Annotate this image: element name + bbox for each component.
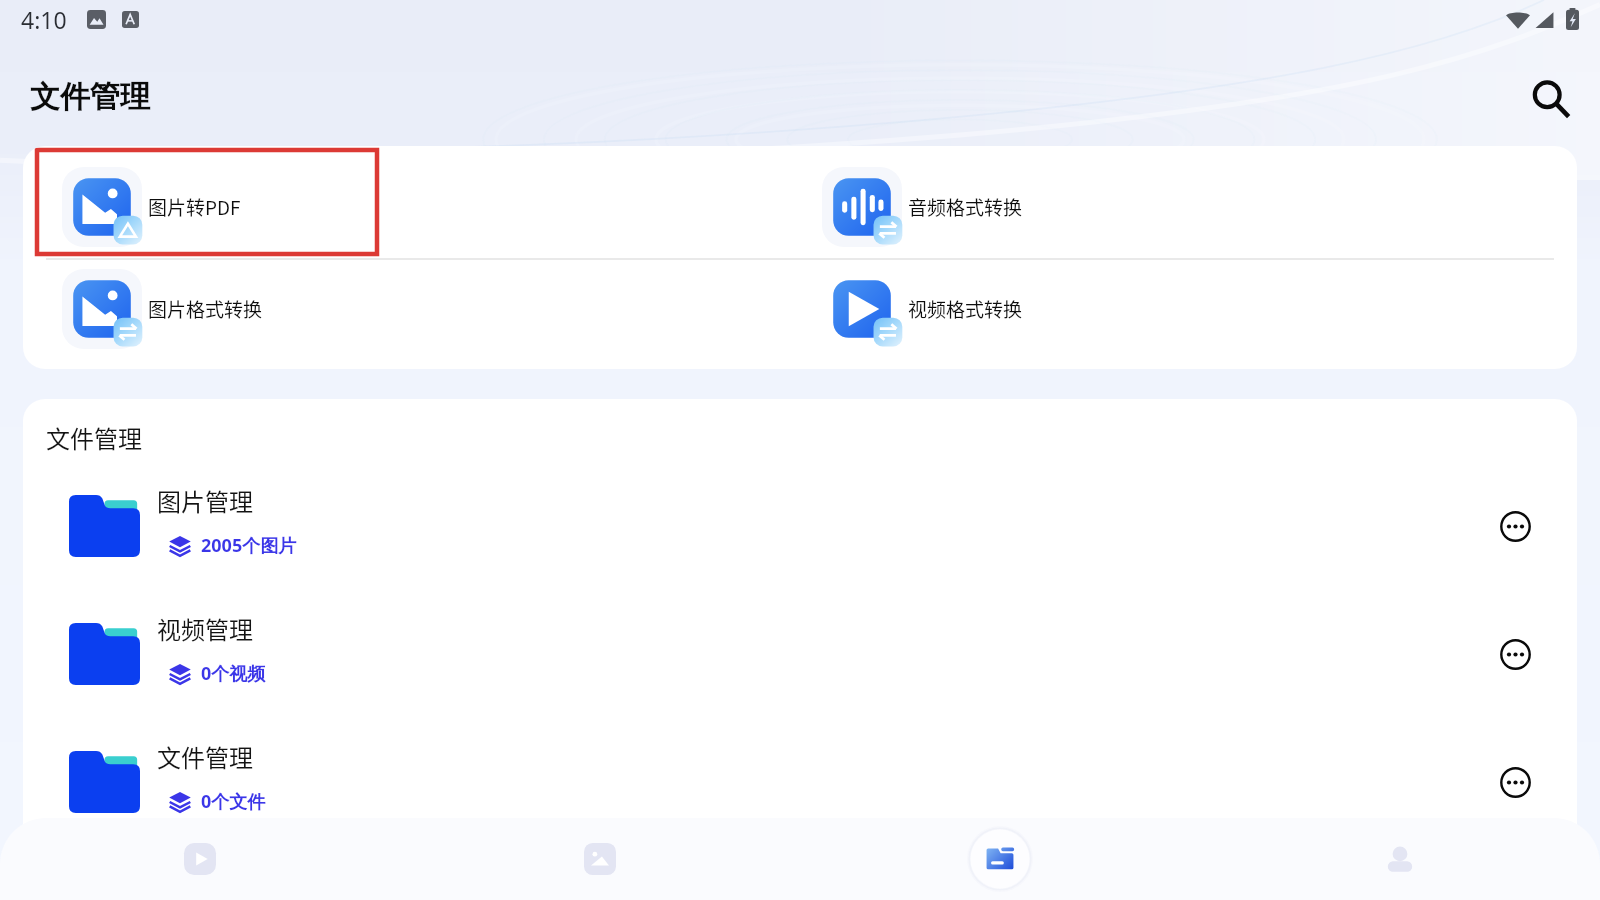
button[interactable]: 视频管理: [23, 590, 1577, 718]
staticText: 音频格式转换: [908, 193, 1023, 221]
staticText: 图片格式转换: [148, 295, 263, 323]
button[interactable]: 图片转PDF: [23, 146, 800, 258]
staticText: 4:10: [21, 4, 67, 35]
button[interactable]: More options: [1493, 632, 1537, 676]
staticText: 0个文件: [201, 789, 266, 814]
button[interactable]: 文件管理: [23, 718, 1577, 846]
staticText: 2005个图片: [201, 533, 297, 558]
button[interactable]: 视频格式转换: [800, 260, 1577, 369]
staticText: 文件管理: [157, 739, 253, 774]
button[interactable]: Images: [400, 818, 800, 900]
staticText: 视频格式转换: [908, 295, 1023, 323]
staticText: 图片管理: [157, 483, 253, 518]
staticText: 图片转PDF: [148, 193, 241, 221]
button[interactable]: Video: [0, 818, 400, 900]
staticText: 视频管理: [157, 611, 253, 646]
button[interactable]: More options: [1493, 760, 1537, 804]
staticText: 文件管理: [30, 78, 150, 116]
button[interactable]: 音频格式转换: [800, 146, 1577, 258]
button[interactable]: 图片管理: [23, 462, 1577, 590]
button[interactable]: More options: [1493, 504, 1537, 548]
button[interactable]: 图片格式转换: [23, 260, 800, 369]
button[interactable]: Files: [800, 818, 1200, 900]
button[interactable]: Search: [1521, 69, 1581, 129]
staticText: 文件管理: [46, 420, 142, 455]
staticText: 0个视频: [201, 661, 266, 686]
